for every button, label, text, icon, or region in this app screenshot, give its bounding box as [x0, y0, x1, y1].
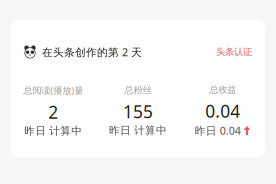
staticText: 总粉丝: [124, 84, 151, 96]
staticText: 总阅读(播放)量: [23, 84, 83, 96]
staticText: 在头条创作的第 2 天: [42, 45, 142, 59]
button[interactable]: 在头条创作的第 2 天: [11, 20, 265, 84]
staticText: 总收益: [209, 84, 236, 95]
staticText: 昨日 0.04: [195, 123, 241, 138]
staticText: 昨日 计算中: [24, 124, 82, 138]
staticText: 0.04: [205, 99, 240, 122]
staticText: 昨日 计算中: [109, 124, 167, 137]
staticText: 155: [123, 100, 153, 123]
staticText: 头条认证: [216, 46, 252, 58]
staticText: 2: [48, 100, 58, 123]
